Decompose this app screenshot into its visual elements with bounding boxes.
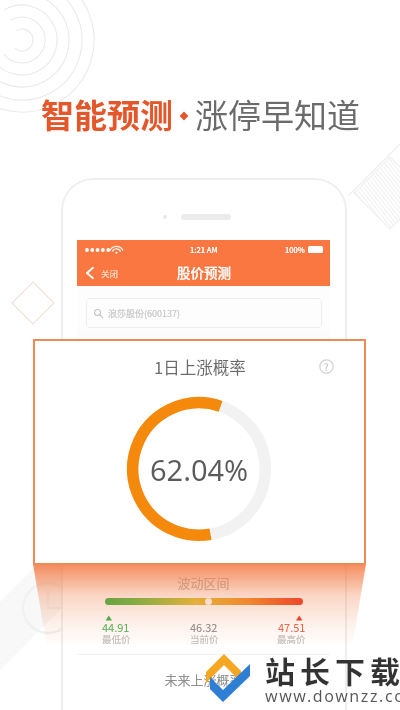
staticText: 股价预测 <box>177 262 231 282</box>
staticText: 100% <box>285 244 305 255</box>
button[interactable]: Search <box>86 298 322 328</box>
button[interactable]: Help <box>319 359 334 374</box>
staticText: 站长下载 <box>265 648 400 691</box>
staticText: 1:21 AM <box>190 244 218 255</box>
staticText: 关闭 <box>101 267 119 279</box>
staticText: 浪莎股份(600137) <box>108 307 181 320</box>
staticText: 44.91 <box>102 619 130 635</box>
staticText: 涨停早知道 <box>195 90 360 138</box>
other: Search <box>94 309 103 318</box>
staticText: 当前价 <box>190 632 219 646</box>
button[interactable]: Back <box>86 267 119 279</box>
staticText: 智能预测 <box>41 90 173 138</box>
button[interactable]: 1日上涨概率 <box>33 339 366 565</box>
staticText: 未来上涨概率 <box>77 670 330 689</box>
staticText: www.downzz.com <box>265 685 400 707</box>
staticText: 46.32 <box>190 619 218 635</box>
other: Back <box>86 267 93 279</box>
staticText: 62.04% <box>150 450 249 489</box>
staticText: 最高价 <box>277 632 306 646</box>
staticText: ? <box>324 360 329 374</box>
staticText: 47.51 <box>278 619 306 635</box>
staticText: 波动区间 <box>77 573 330 592</box>
staticText: 1日上涨概率 <box>154 355 246 379</box>
staticText: 最低价 <box>102 632 131 646</box>
